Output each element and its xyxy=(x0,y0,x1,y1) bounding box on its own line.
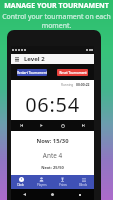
button[interactable]: Clock xyxy=(11,175,31,189)
button[interactable]: Previous level xyxy=(11,120,31,131)
button[interactable]: Back xyxy=(11,189,38,200)
button[interactable]: Play xyxy=(31,120,52,131)
button[interactable]: Reset Tournament xyxy=(57,69,88,76)
button[interactable]: Menu xyxy=(13,55,21,63)
staticText: Ante 4 xyxy=(11,151,94,160)
staticText: Players xyxy=(37,183,47,187)
staticText: 00:00:22 xyxy=(76,82,90,87)
staticText: 06:54 xyxy=(11,91,94,118)
staticText: Blinds xyxy=(79,183,88,187)
button[interactable]: Players xyxy=(31,175,52,189)
staticText: Running xyxy=(61,83,74,87)
staticText: Clock xyxy=(17,183,25,187)
button[interactable]: Prizes xyxy=(52,175,73,189)
button[interactable]: Home xyxy=(38,189,66,200)
button[interactable]: Recents xyxy=(66,189,94,200)
button[interactable]: Reset timer xyxy=(52,120,73,131)
staticText: Prizes xyxy=(59,183,67,187)
staticText: MANAGE YOUR TOURNAMENT xyxy=(4,1,109,11)
staticText: Control your tournament on each moment. xyxy=(0,12,113,30)
staticText: Reset Tournament xyxy=(59,71,87,75)
staticText: Now: 15/30 xyxy=(11,137,94,145)
staticText: Restart Tournament xyxy=(17,71,47,75)
staticText: Next: 25/50 xyxy=(11,165,94,170)
button[interactable]: Blinds xyxy=(73,175,94,189)
button[interactable]: Next level xyxy=(73,120,94,131)
staticText: Level 2 xyxy=(24,55,45,63)
button[interactable]: Restart Tournament xyxy=(17,69,47,76)
